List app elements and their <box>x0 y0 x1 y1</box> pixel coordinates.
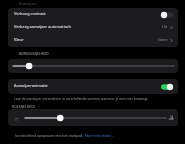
staticText: Aanwijzer <box>19 1 38 6</box>
button[interactable]: Aanwijzeranimatie <box>8 79 178 94</box>
staticText: Kleur <box>14 37 24 42</box>
button[interactable]: Verhoog contrast <box>8 8 178 21</box>
staticText: Verhoog contrast <box>14 11 46 16</box>
staticText: Verberg aanwijzer automatisch <box>14 24 71 29</box>
staticText: ROLSNELHEID <box>12 104 35 109</box>
staticText: Meer informatie... <box>85 133 114 138</box>
button[interactable]: Aanpassingssnelheid <box>8 59 178 73</box>
staticText: BEWEEGSNELHEID <box>19 51 49 56</box>
button[interactable]: Verhoog contrast <box>161 12 173 18</box>
button[interactable]: Verberg aanwijzer automatisch <box>8 21 178 34</box>
button[interactable]: Kleur <box>8 34 178 47</box>
staticText: Geen <box>158 37 168 42</box>
staticText: Scrolsnelheid aanpassen met het trackpad… <box>15 133 85 138</box>
staticText: Uit <box>162 24 168 29</box>
button[interactable]: Aanwijzeranimatie <box>161 84 173 90</box>
staticText: Aanwijzeranimatie <box>14 83 48 88</box>
staticText: Laat de aanwijzer veranderen in verschil… <box>14 96 149 101</box>
button[interactable]: Scrolsnelheid <box>8 109 178 126</box>
button[interactable]: Meer informatie... <box>85 133 114 138</box>
